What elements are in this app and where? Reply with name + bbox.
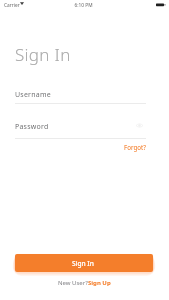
- staticText: 6:10 PM: [74, 2, 93, 9]
- staticText: Password: [15, 122, 49, 132]
- staticText: Username: [15, 90, 51, 100]
- staticText: Forgot?: [124, 143, 146, 151]
- button[interactable]: Sign In: [15, 254, 153, 272]
- button[interactable]: Sign Up: [88, 279, 111, 287]
- staticText: New User?: [58, 279, 88, 287]
- button[interactable]: Show password: [133, 119, 146, 132]
- button[interactable]: Forgot?: [122, 141, 148, 153]
- staticText: Sign In: [72, 259, 94, 268]
- staticText: Sign In: [15, 43, 71, 66]
- staticText: Carrier: [4, 2, 20, 9]
